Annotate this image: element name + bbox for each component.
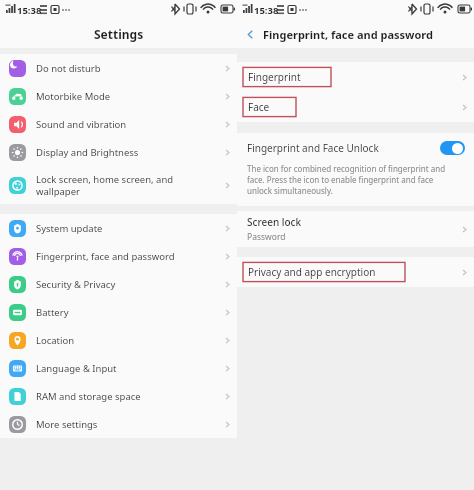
staticText: Settings — [94, 26, 144, 42]
staticText: System update — [36, 222, 217, 235]
button[interactable]: Language & Input — [0, 354, 237, 382]
button[interactable]: RAM and storage space — [0, 382, 237, 410]
button[interactable]: Fingerprint — [237, 62, 474, 92]
button[interactable]: Security & Privacy — [0, 270, 237, 298]
button[interactable]: Display and Brightness — [0, 138, 237, 166]
staticText: Fingerprint — [248, 70, 301, 84]
staticText: Sound and vibration — [36, 118, 217, 131]
staticText: Face — [248, 100, 270, 114]
button[interactable]: Fingerprint and Face Unlock toggle — [440, 141, 465, 155]
staticText: Fingerprint, face and password — [36, 250, 217, 263]
button[interactable]: Battery — [0, 298, 237, 326]
button[interactable]: Motorbike Mode — [0, 82, 237, 110]
staticText: More settings — [36, 418, 217, 431]
button[interactable]: Screen lock — [237, 211, 474, 247]
staticText: 15:38 — [17, 4, 42, 17]
staticText: The icon for combined recognition of fin… — [247, 163, 446, 196]
button[interactable]: More settings — [0, 410, 237, 438]
staticText: Location — [36, 334, 217, 347]
staticText: Lock screen, home screen, and wallpaper — [36, 173, 217, 198]
staticText: Security & Privacy — [36, 278, 217, 291]
button[interactable]: Lock screen, home screen, and wallpaper — [0, 166, 237, 204]
staticText: Fingerprint and Face Unlock — [247, 141, 440, 155]
button[interactable]: Face — [237, 92, 474, 122]
staticText: Battery — [36, 306, 217, 319]
button[interactable]: Fingerprint, face and password — [0, 242, 237, 270]
button[interactable]: Fingerprint and Face Unlock — [237, 133, 474, 163]
staticText: Screen lock — [247, 215, 302, 229]
staticText: Password — [247, 231, 286, 243]
staticText: Do not disturb — [36, 62, 217, 75]
staticText: 15:38 — [254, 4, 279, 17]
staticText: RAM and storage space — [36, 390, 217, 403]
staticText: Privacy and app encryption — [248, 265, 376, 279]
staticText: Fingerprint, face and password — [263, 27, 434, 42]
button[interactable]: System update — [0, 214, 237, 242]
staticText: Display and Brightness — [36, 146, 217, 159]
staticText: Language & Input — [36, 362, 217, 375]
button[interactable]: Privacy and app encryption — [237, 257, 474, 287]
button[interactable]: Do not disturb — [0, 54, 237, 82]
button[interactable]: Back — [237, 21, 263, 47]
staticText: Motorbike Mode — [36, 90, 217, 103]
button[interactable]: Location — [0, 326, 237, 354]
button[interactable]: Sound and vibration — [0, 110, 237, 138]
